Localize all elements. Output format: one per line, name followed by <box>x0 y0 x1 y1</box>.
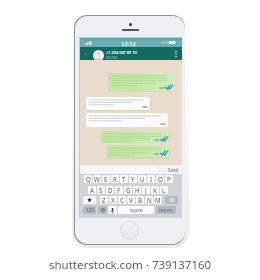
button[interactable]: H <box>133 186 141 194</box>
button[interactable]: O <box>156 175 164 183</box>
staticText: Y <box>131 175 135 183</box>
staticText: J <box>145 186 147 194</box>
button[interactable]: P <box>165 175 173 183</box>
button[interactable]: Contact photo <box>93 50 104 61</box>
button[interactable] <box>101 131 169 143</box>
button[interactable]: Home <box>120 221 139 240</box>
button[interactable]: C <box>118 196 126 204</box>
staticText: F <box>117 186 121 194</box>
button[interactable] <box>86 113 168 127</box>
button[interactable]: L <box>160 186 168 194</box>
staticText: B <box>138 196 143 204</box>
staticText: X <box>111 196 115 204</box>
staticText: S <box>99 186 103 194</box>
button[interactable]: K <box>151 186 159 194</box>
staticText: C <box>120 196 124 204</box>
button[interactable]: V <box>127 196 135 204</box>
button[interactable] <box>107 145 169 157</box>
staticText: Z <box>102 196 106 204</box>
button[interactable]: space <box>118 206 154 214</box>
staticText: K <box>153 186 157 194</box>
staticText: M <box>155 196 161 204</box>
button[interactable]: U <box>138 175 146 183</box>
button[interactable]: E <box>102 175 110 183</box>
button[interactable]: Emoji <box>98 206 107 214</box>
button[interactable]: W <box>93 175 101 183</box>
button[interactable]: M <box>154 196 162 204</box>
staticText: space <box>130 207 143 213</box>
staticText: A <box>90 186 94 194</box>
staticText: O <box>158 175 163 183</box>
button[interactable]: Dictate <box>108 206 117 214</box>
staticText: 12:12 <box>121 40 136 48</box>
button[interactable]: N <box>145 196 153 204</box>
staticText: +1 234 567 89 10 <box>106 50 137 55</box>
staticText: L <box>162 186 166 194</box>
staticText: Send <box>168 167 179 173</box>
button[interactable]: Backspace <box>165 196 178 204</box>
button[interactable]: Y <box>129 175 137 183</box>
button[interactable]: F <box>115 186 123 194</box>
button[interactable]: return <box>156 206 176 214</box>
button[interactable]: R <box>111 175 119 183</box>
button[interactable]: Shift <box>83 196 96 204</box>
button[interactable]: D <box>106 186 114 194</box>
button[interactable]: J <box>142 186 150 194</box>
staticText: U <box>140 175 145 183</box>
staticText: Q <box>86 175 91 183</box>
staticText: N <box>147 196 152 204</box>
staticText: shutterstock.com · 739137160 <box>49 257 212 273</box>
staticText: G <box>126 186 131 194</box>
button[interactable]: I <box>147 175 155 183</box>
staticText: 123 <box>86 207 94 213</box>
button[interactable]: Q <box>84 175 92 183</box>
button[interactable]: A <box>88 186 96 194</box>
staticText: 100% <box>161 41 170 45</box>
button[interactable]: 123 <box>83 206 96 214</box>
button[interactable] <box>86 97 150 110</box>
button[interactable]: Z <box>100 196 108 204</box>
staticText: R <box>113 175 117 183</box>
button[interactable]: Send <box>168 167 179 173</box>
staticText: T <box>122 175 126 183</box>
staticText: P <box>167 175 171 183</box>
staticText: E <box>104 175 108 183</box>
button[interactable]: T <box>120 175 128 183</box>
button[interactable]: S <box>97 186 105 194</box>
staticText: I <box>150 175 153 183</box>
button[interactable]: More options <box>172 49 180 58</box>
button[interactable]: G <box>124 186 132 194</box>
staticText: H <box>135 186 140 194</box>
button[interactable] <box>109 73 174 91</box>
staticText: V <box>129 196 133 204</box>
staticText: W <box>94 175 100 183</box>
staticText: D <box>108 186 113 194</box>
staticText: ONLINE <box>106 56 118 60</box>
staticText: return <box>159 207 173 213</box>
button[interactable]: Back <box>82 49 91 58</box>
button[interactable]: B <box>136 196 144 204</box>
button[interactable]: X <box>109 196 117 204</box>
